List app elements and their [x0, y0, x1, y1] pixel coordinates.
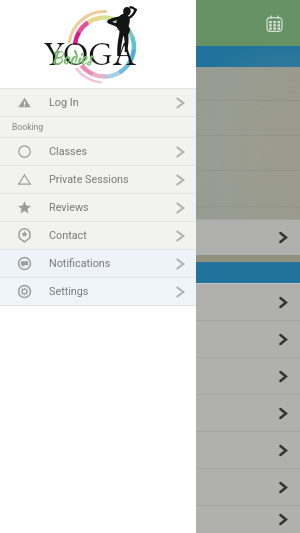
button[interactable]	[0, 506, 300, 533]
staticText: YOGA	[44, 31, 136, 75]
button[interactable]: Contact	[0, 222, 196, 249]
button[interactable]: Classes	[0, 138, 196, 165]
button[interactable]: Notifications	[0, 250, 196, 277]
button[interactable]	[0, 469, 300, 505]
staticText: Classes	[49, 145, 87, 158]
button[interactable]	[0, 284, 300, 320]
button[interactable]: Calendar	[266, 15, 283, 32]
button[interactable]	[0, 395, 300, 431]
button[interactable]	[0, 220, 300, 255]
staticText: Settings	[49, 285, 89, 298]
button[interactable]: Reviews	[0, 194, 196, 221]
staticText: Bodies	[51, 47, 93, 70]
button[interactable]	[0, 432, 300, 468]
staticText: Notifications	[49, 257, 111, 270]
button[interactable]: Settings	[0, 278, 196, 305]
staticText: Contact	[49, 229, 87, 242]
button[interactable]	[0, 358, 300, 394]
staticText: Booking	[12, 122, 44, 132]
staticText: Log In	[49, 96, 79, 109]
staticText: Private Sessions	[49, 173, 129, 186]
button[interactable]: Private Sessions	[0, 166, 196, 193]
staticText: Reviews	[49, 201, 89, 214]
button[interactable]: Log In	[0, 89, 196, 116]
button[interactable]	[0, 321, 300, 357]
